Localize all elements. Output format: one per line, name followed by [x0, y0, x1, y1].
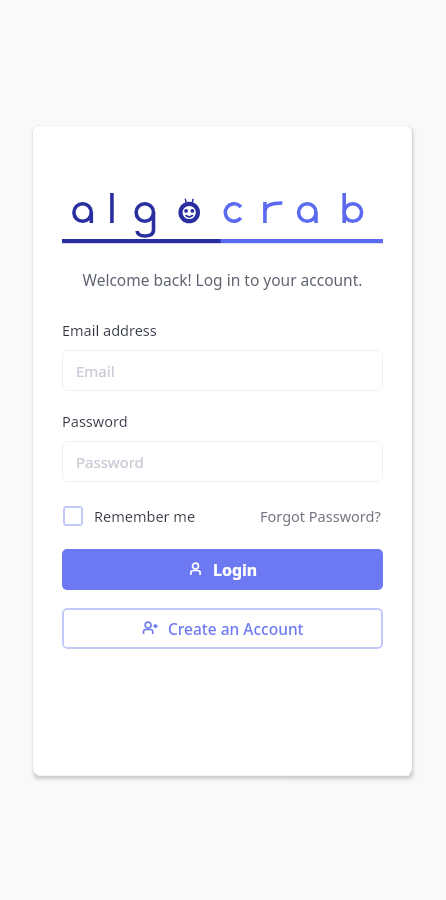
staticText: Password [62, 411, 128, 431]
button[interactable]: Forgot Password? [258, 502, 383, 530]
staticText: Login [213, 559, 258, 581]
staticText: Email [76, 361, 115, 381]
button[interactable]: Login [62, 549, 383, 590]
button[interactable]: Password [62, 441, 383, 482]
button[interactable]: Create an Account [62, 608, 383, 649]
staticText: Create an Account [168, 618, 304, 639]
staticText: Remember me [94, 506, 196, 526]
other: algocrab [62, 188, 383, 240]
button[interactable]: Remember me [62, 503, 197, 529]
staticText: Password [76, 452, 144, 472]
staticText: Welcome back! Log in to your account. [62, 269, 383, 290]
button[interactable]: Email [62, 350, 383, 391]
staticText: Email address [62, 320, 157, 340]
staticText: Forgot Password? [260, 506, 381, 526]
